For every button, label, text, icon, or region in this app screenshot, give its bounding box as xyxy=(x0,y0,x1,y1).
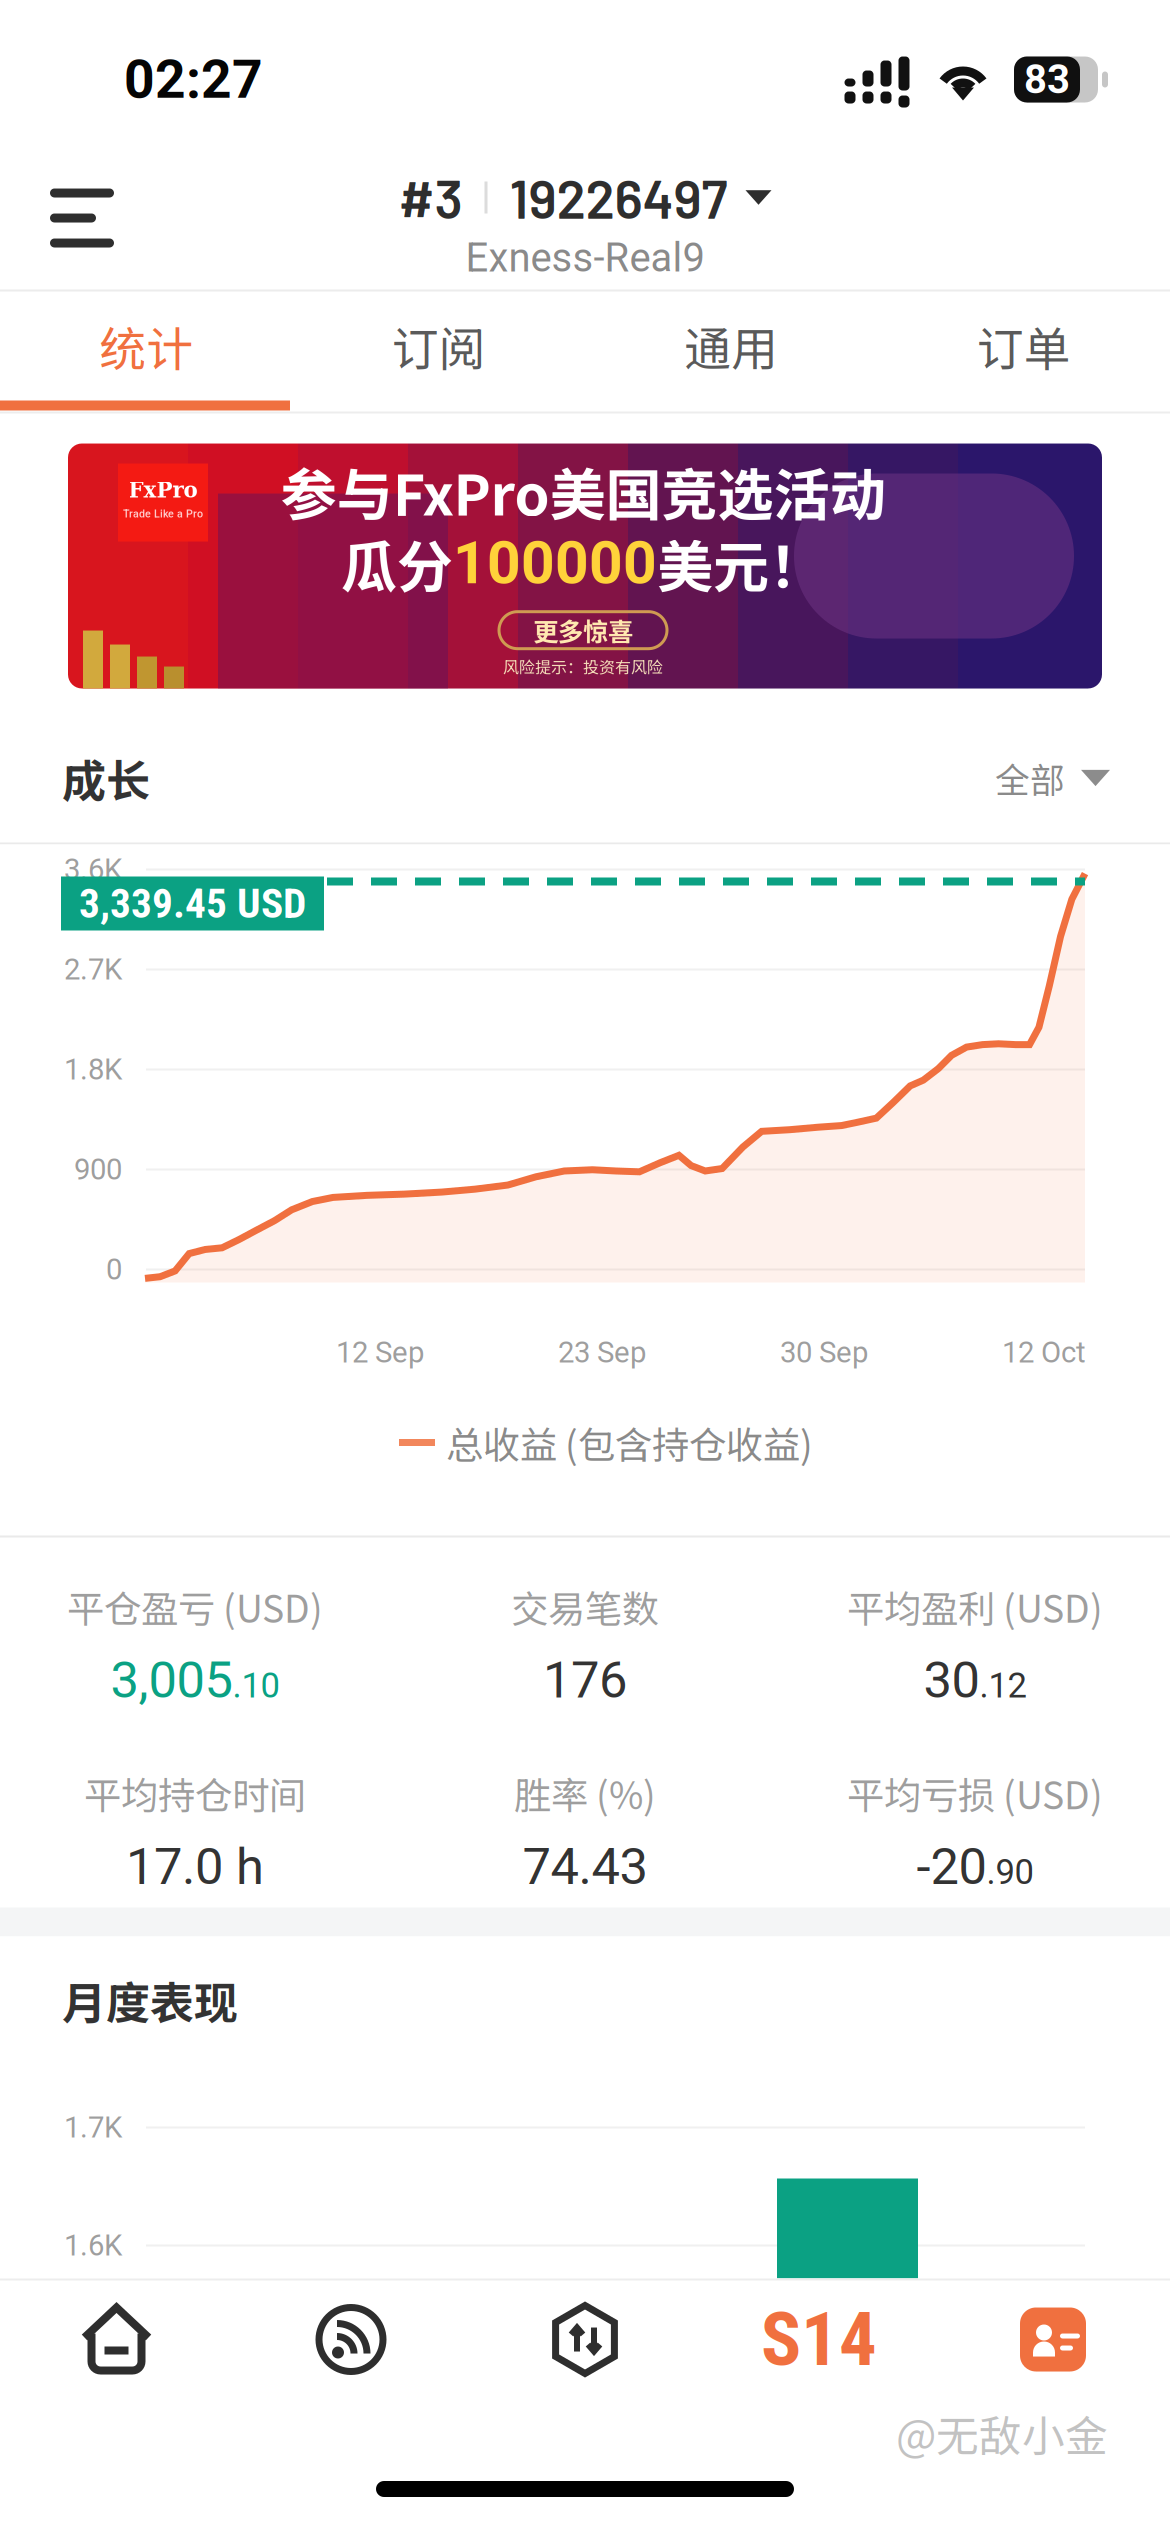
staticText: .90 xyxy=(986,1852,1033,1892)
staticText: 月度表现 xyxy=(62,1968,238,2032)
staticText: 1.7K xyxy=(64,2110,122,2145)
button[interactable]: Trade xyxy=(468,2280,702,2398)
staticText: 更多惊喜 xyxy=(533,612,633,648)
button[interactable]: #3 xyxy=(398,159,771,281)
staticText: 23 Sep xyxy=(558,1335,646,1370)
staticText: 74.43 xyxy=(522,1837,647,1896)
staticText: FxPro xyxy=(128,477,197,503)
staticText: 全部 xyxy=(995,753,1065,803)
staticText: 平均持仓时间 xyxy=(84,1766,306,1820)
staticText: 美元！ xyxy=(657,523,825,604)
staticText: 1.6K xyxy=(64,2228,122,2263)
staticText: 胜率 (%) xyxy=(514,1766,656,1820)
staticText: 瓜分 xyxy=(341,523,453,604)
staticText: 成长 xyxy=(62,746,150,810)
staticText: 3,339.45 USD xyxy=(79,879,306,928)
staticText: 83 xyxy=(1024,56,1070,103)
staticText: 统计 xyxy=(99,312,193,380)
staticText: 风险提示：投资有风险 xyxy=(503,655,663,678)
button[interactable]: 统计 xyxy=(0,291,292,400)
staticText: 平仓盈亏 (USD) xyxy=(67,1579,323,1634)
staticText: 平均盈利 (USD) xyxy=(847,1579,1103,1634)
button[interactable]: S14 xyxy=(702,2280,936,2398)
staticText: #3 xyxy=(398,165,462,229)
staticText: 交易笔数 xyxy=(511,1579,659,1634)
staticText: Trade Like a Pro xyxy=(123,508,203,520)
staticText: 900 xyxy=(74,1152,122,1187)
staticText: 总收益 (包含持仓收益) xyxy=(446,1415,813,1470)
staticText: S14 xyxy=(761,2296,877,2383)
staticText: 176 xyxy=(543,1651,627,1710)
button[interactable]: 通用 xyxy=(585,291,877,400)
button[interactable]: FxPro promotion xyxy=(0,443,1170,688)
button[interactable]: 订单 xyxy=(877,291,1170,400)
button[interactable]: 订阅 xyxy=(292,291,585,400)
staticText: 12 Sep xyxy=(336,1335,424,1370)
staticText: 1.8K xyxy=(64,1052,122,1087)
staticText: 订单 xyxy=(977,312,1071,380)
button[interactable]: Home xyxy=(0,2280,234,2398)
staticText: 3,005 xyxy=(110,1651,232,1710)
staticText: 通用 xyxy=(684,312,778,380)
staticText: 3.6K xyxy=(64,852,122,887)
staticText: 19226497 xyxy=(509,165,727,229)
staticText: Exness-Real9 xyxy=(465,234,704,281)
staticText: 02:27 xyxy=(124,48,263,111)
staticText: @无敌小金 xyxy=(896,2403,1108,2464)
staticText: 30 xyxy=(923,1651,979,1710)
staticText: 订阅 xyxy=(392,312,486,380)
staticText: .10 xyxy=(232,1665,279,1706)
button[interactable]: Menu xyxy=(0,159,148,269)
staticText: 12 Oct xyxy=(1002,1335,1086,1370)
staticText: 参与FxPro美国竞选活动 xyxy=(280,450,885,532)
staticText: -20 xyxy=(916,1837,986,1896)
staticText: 30 Sep xyxy=(780,1335,868,1370)
staticText: 2.7K xyxy=(64,952,122,987)
button[interactable]: 全部 xyxy=(995,753,1110,803)
button[interactable]: Profile xyxy=(936,2280,1170,2398)
staticText: 17.0 h xyxy=(126,1837,264,1896)
staticText: 平均亏损 (USD) xyxy=(847,1766,1103,1820)
staticText: 100000 xyxy=(453,529,657,598)
staticText: 0 xyxy=(106,1252,122,1287)
button[interactable]: Signals xyxy=(234,2280,468,2398)
staticText: .12 xyxy=(979,1665,1026,1706)
